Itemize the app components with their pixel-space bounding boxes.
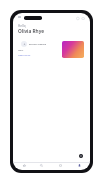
staticText: Olivia Rhye [18,28,45,35]
button[interactable]: Search [38,162,44,168]
button[interactable]: Library [57,162,63,168]
button[interactable]: Featured [62,41,84,58]
button[interactable]: Add [79,154,83,158]
staticText: Recently Opened [29,43,47,46]
staticText: View Trends [18,54,31,57]
button[interactable]: Profile [76,162,82,168]
staticText: Hello, [18,24,27,28]
button[interactable]: Home [21,162,27,168]
staticText: Today [18,49,24,52]
